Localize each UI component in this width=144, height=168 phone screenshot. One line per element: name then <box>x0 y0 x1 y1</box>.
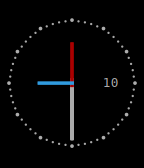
staticText: 10 <box>103 75 119 90</box>
